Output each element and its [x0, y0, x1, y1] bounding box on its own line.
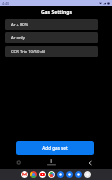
staticText: Gas Settings — [41, 9, 72, 16]
staticText: Add gas set — [42, 145, 68, 151]
button[interactable]: Meet — [75, 171, 82, 178]
staticText: Ar only — [11, 35, 25, 41]
button[interactable]: Photos — [48, 171, 55, 178]
button[interactable]: Chrome — [30, 171, 37, 178]
button[interactable]: Add gas set — [16, 141, 94, 155]
button[interactable]: Gmail — [21, 171, 28, 178]
button[interactable]: Ar + 80% — [5, 19, 98, 30]
staticText: Ar + 80% — [11, 22, 29, 28]
button[interactable]: Ar only — [5, 32, 98, 43]
button[interactable]: Messages — [66, 171, 73, 178]
staticText: 4:40 — [2, 1, 10, 6]
button[interactable]: YouTube — [39, 171, 46, 178]
button[interactable]: Phone — [57, 171, 64, 178]
staticText: CCR Trix 10/50 dil — [11, 49, 46, 55]
button[interactable]: CCR Trix 10/50 dil — [5, 46, 98, 57]
button[interactable]: Apps — [84, 171, 91, 178]
